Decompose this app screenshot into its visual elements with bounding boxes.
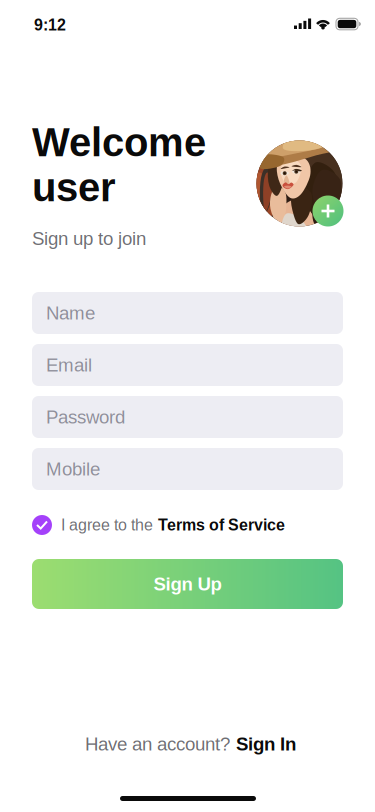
staticText: Password — [46, 407, 125, 427]
button[interactable]: Email — [32, 344, 343, 386]
button[interactable]: Name — [32, 292, 343, 334]
staticText: Terms of Service — [158, 516, 285, 534]
staticText: Sign In — [236, 734, 296, 754]
staticText: Mobile — [46, 459, 100, 479]
staticText: user — [32, 165, 116, 210]
button[interactable]: Password — [32, 396, 343, 438]
button[interactable]: Mobile — [32, 448, 343, 490]
staticText: Email — [46, 355, 92, 375]
staticText: Name — [46, 303, 95, 323]
button[interactable]: Add profile photo — [312, 195, 343, 226]
button[interactable]: Sign Up — [32, 559, 343, 609]
staticText: 9:12 — [34, 16, 66, 34]
button[interactable]: Have an account? — [85, 733, 296, 755]
staticText: I agree to the — [61, 516, 153, 534]
button[interactable]: I agree to the — [32, 514, 343, 536]
staticText: Sign Up — [153, 574, 221, 594]
staticText: Welcome — [32, 120, 206, 165]
staticText: Have an account? — [85, 734, 230, 754]
staticText: Sign up to join — [32, 228, 146, 249]
